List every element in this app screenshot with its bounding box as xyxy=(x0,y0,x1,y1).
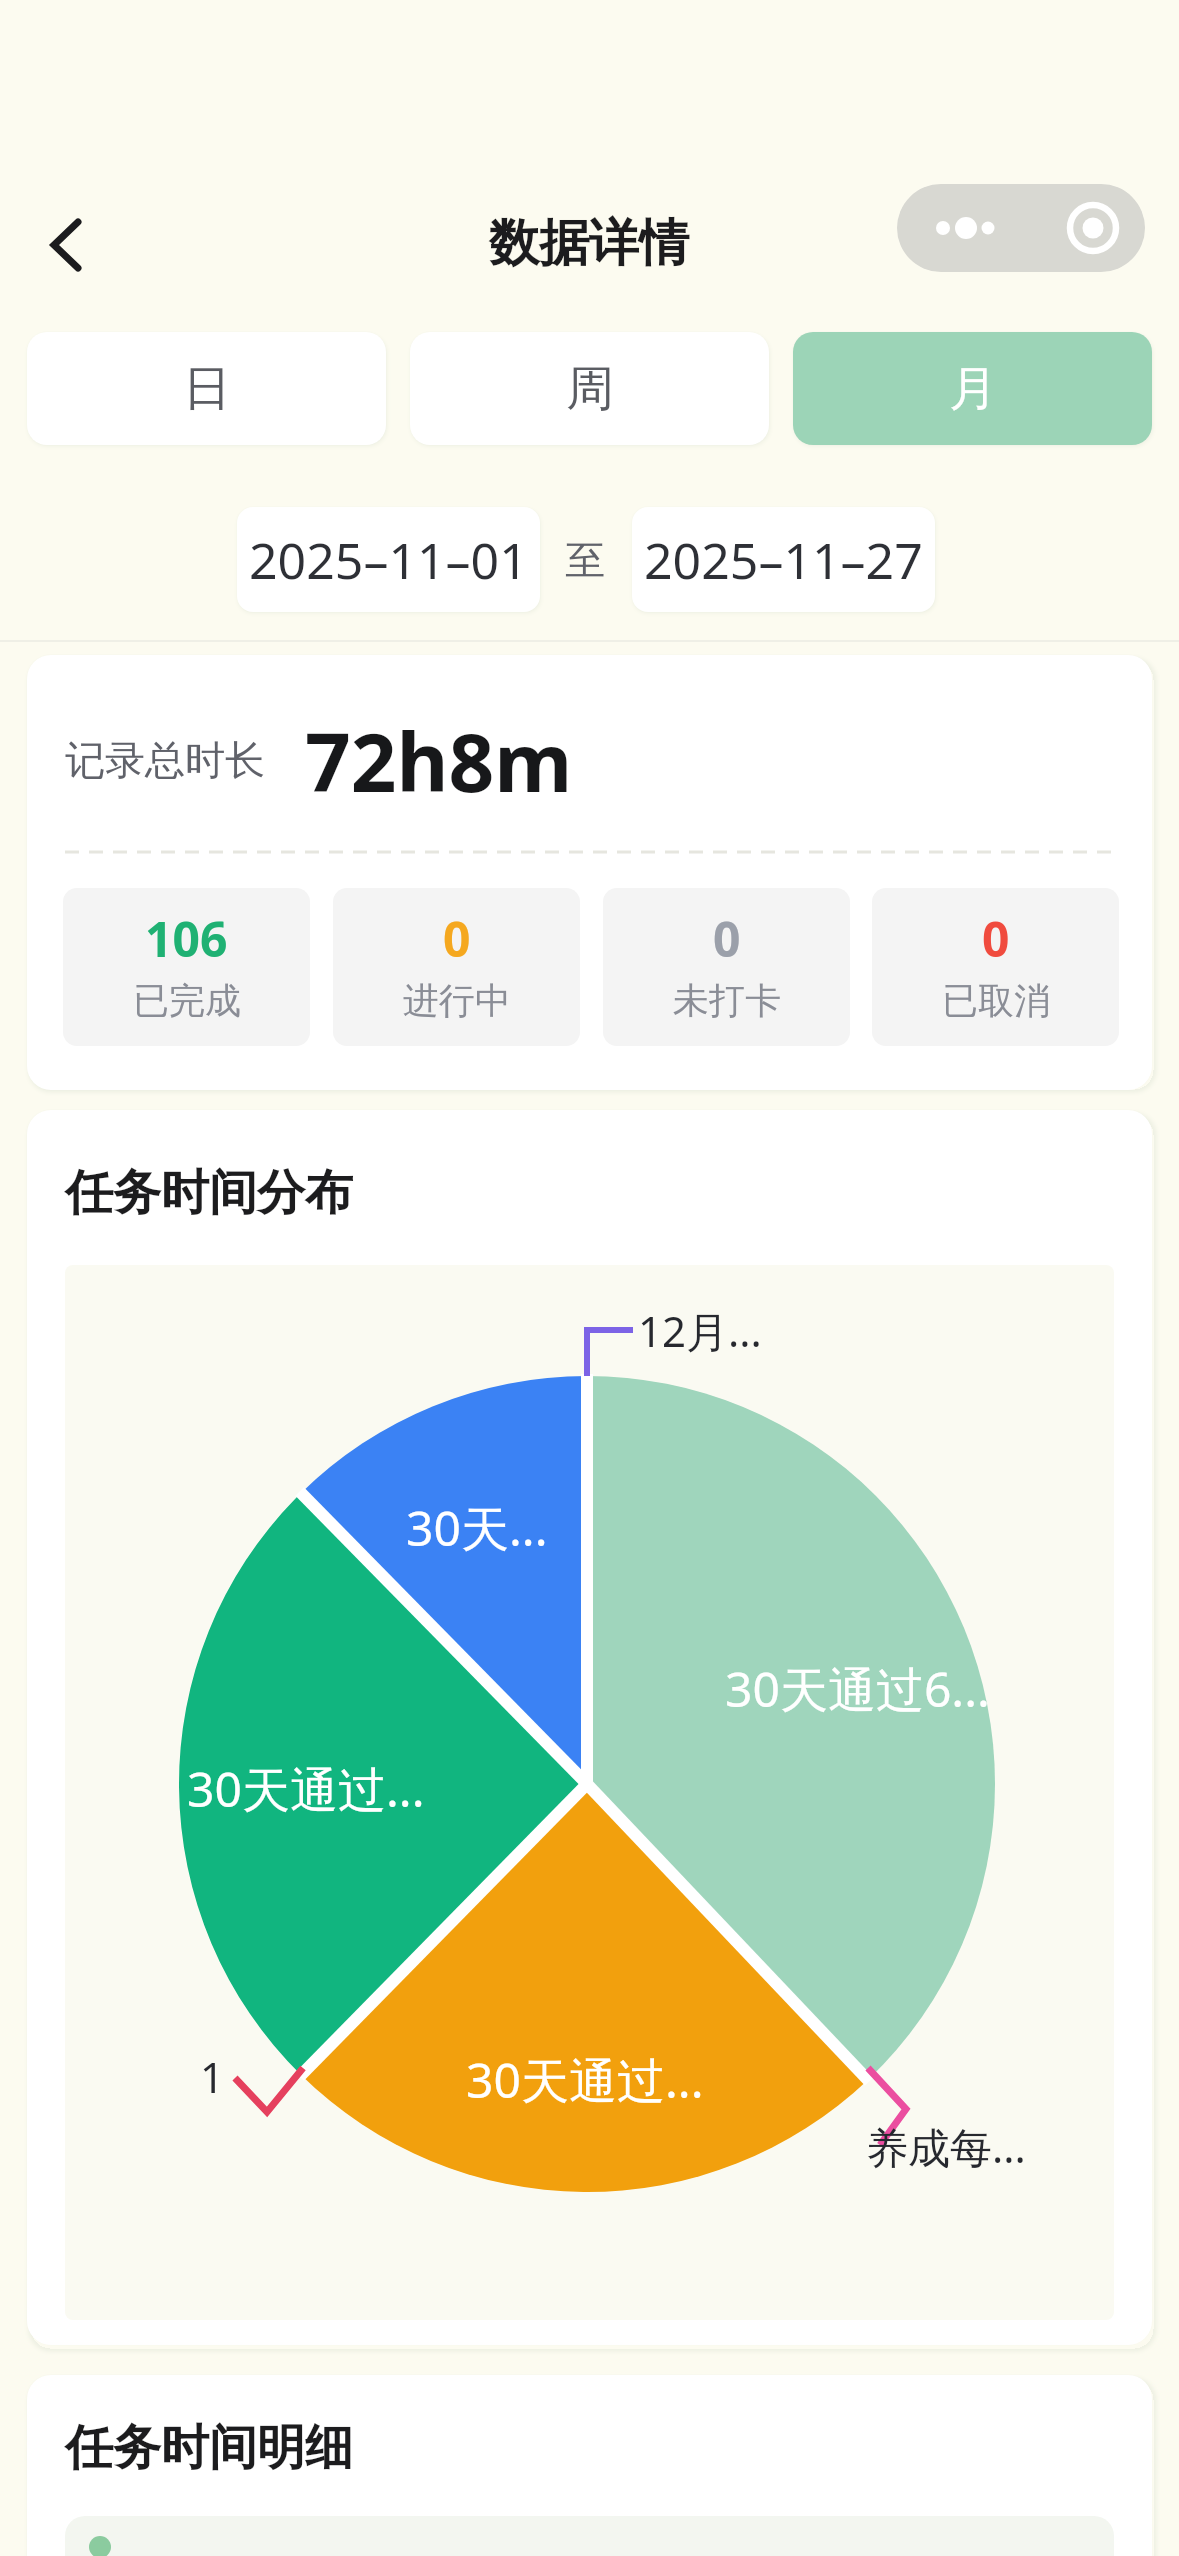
staticText: 任务时间分布 xyxy=(65,1163,353,1223)
staticText: 1 xyxy=(200,2048,225,2104)
staticText: 0 xyxy=(982,906,1010,968)
staticText: 已取消 xyxy=(942,978,1050,1023)
staticText: 未打卡 xyxy=(673,978,781,1023)
button[interactable]: 周 xyxy=(410,332,769,445)
staticText: 养成每... xyxy=(866,2118,1026,2174)
staticText: 已完成 xyxy=(133,978,241,1023)
button[interactable]: 2025–11–27 xyxy=(632,507,935,612)
button[interactable]: 106 xyxy=(63,888,310,1046)
staticText: 周 xyxy=(566,359,614,419)
staticText: 记录总时长 xyxy=(65,735,265,785)
staticText: 进行中 xyxy=(403,978,511,1023)
staticText: 72h8m xyxy=(305,706,573,815)
staticText: 2025–11–27 xyxy=(644,526,923,594)
button[interactable]: 月 xyxy=(793,332,1152,445)
staticText: 0 xyxy=(713,906,741,968)
staticText: 30天... xyxy=(406,1495,548,1555)
staticText: 2025–11–01 xyxy=(249,526,528,594)
button[interactable]: 0 xyxy=(872,888,1119,1046)
staticText: 日 xyxy=(183,359,231,419)
button[interactable]: 日 xyxy=(27,332,386,445)
staticText: 106 xyxy=(145,906,228,968)
button[interactable] xyxy=(65,2516,1114,2556)
button[interactable]: 2025–11–01 xyxy=(237,507,540,612)
button[interactable] xyxy=(44,216,92,274)
staticText: 至 xyxy=(565,535,605,585)
staticText: 30天通过... xyxy=(466,2047,704,2107)
staticText: 12月... xyxy=(638,1302,762,1358)
staticText: 数据详情 xyxy=(489,212,689,275)
staticText: 30天通过... xyxy=(187,1756,425,1816)
staticText: 0 xyxy=(443,906,471,968)
staticText: 月 xyxy=(949,359,997,419)
button[interactable]: 0 xyxy=(603,888,850,1046)
button[interactable] xyxy=(897,184,1145,272)
staticText: 30天通过6... xyxy=(725,1656,990,1716)
staticText: 任务时间明细 xyxy=(65,2418,353,2478)
button[interactable]: 0 xyxy=(333,888,580,1046)
